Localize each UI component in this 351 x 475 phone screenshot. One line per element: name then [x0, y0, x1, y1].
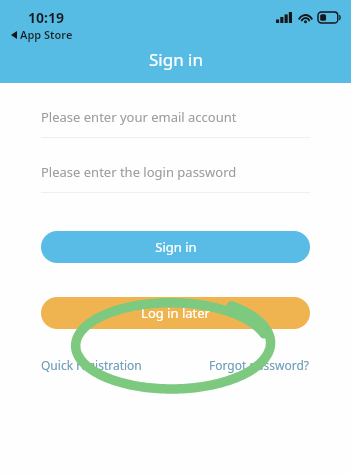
button[interactable]: Back to App Store [9, 26, 75, 43]
staticText: Sign in [155, 238, 197, 256]
button[interactable]: Quick registration [41, 355, 142, 375]
staticText: Please enter the login password [41, 163, 237, 181]
button[interactable]: Please enter the login password [0, 159, 351, 185]
button[interactable]: Sign in [41, 231, 310, 263]
button[interactable]: Log in later [41, 297, 310, 329]
staticText: Quick registration [41, 357, 142, 373]
staticText: Log in later [141, 304, 210, 322]
staticText: Please enter your email account [41, 108, 237, 126]
staticText: App Store [20, 27, 73, 42]
staticText: Forgot password? [209, 357, 310, 373]
staticText: 10:19 [28, 8, 64, 27]
button[interactable]: Forgot password? [209, 355, 310, 375]
button[interactable]: Please enter your email account [0, 104, 351, 130]
staticText: Sign in [149, 48, 203, 71]
